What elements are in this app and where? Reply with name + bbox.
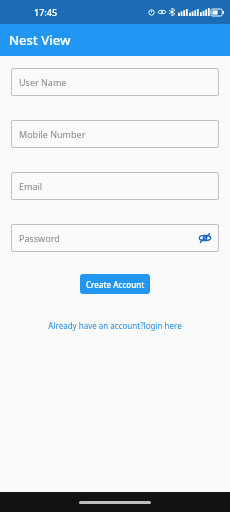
button[interactable]: User Name — [11, 68, 219, 96]
staticText: Already have an account?login here — [48, 320, 182, 331]
staticText: Email — [19, 180, 43, 192]
button[interactable]: Email — [11, 172, 219, 200]
button[interactable]: Toggle password visibility — [198, 231, 212, 245]
button[interactable]: Create Account — [80, 274, 150, 294]
staticText: User Name — [19, 76, 67, 88]
button[interactable]: Already have an account?login here — [44, 316, 186, 335]
staticText: Password — [19, 232, 60, 244]
button[interactable]: Mobile Number — [11, 120, 219, 148]
staticText: Nest View — [9, 31, 71, 49]
staticText: Mobile Number — [19, 128, 86, 140]
staticText: Create Account — [86, 279, 145, 290]
button[interactable]: Password — [11, 224, 219, 252]
staticText: 17:45 — [34, 6, 58, 18]
